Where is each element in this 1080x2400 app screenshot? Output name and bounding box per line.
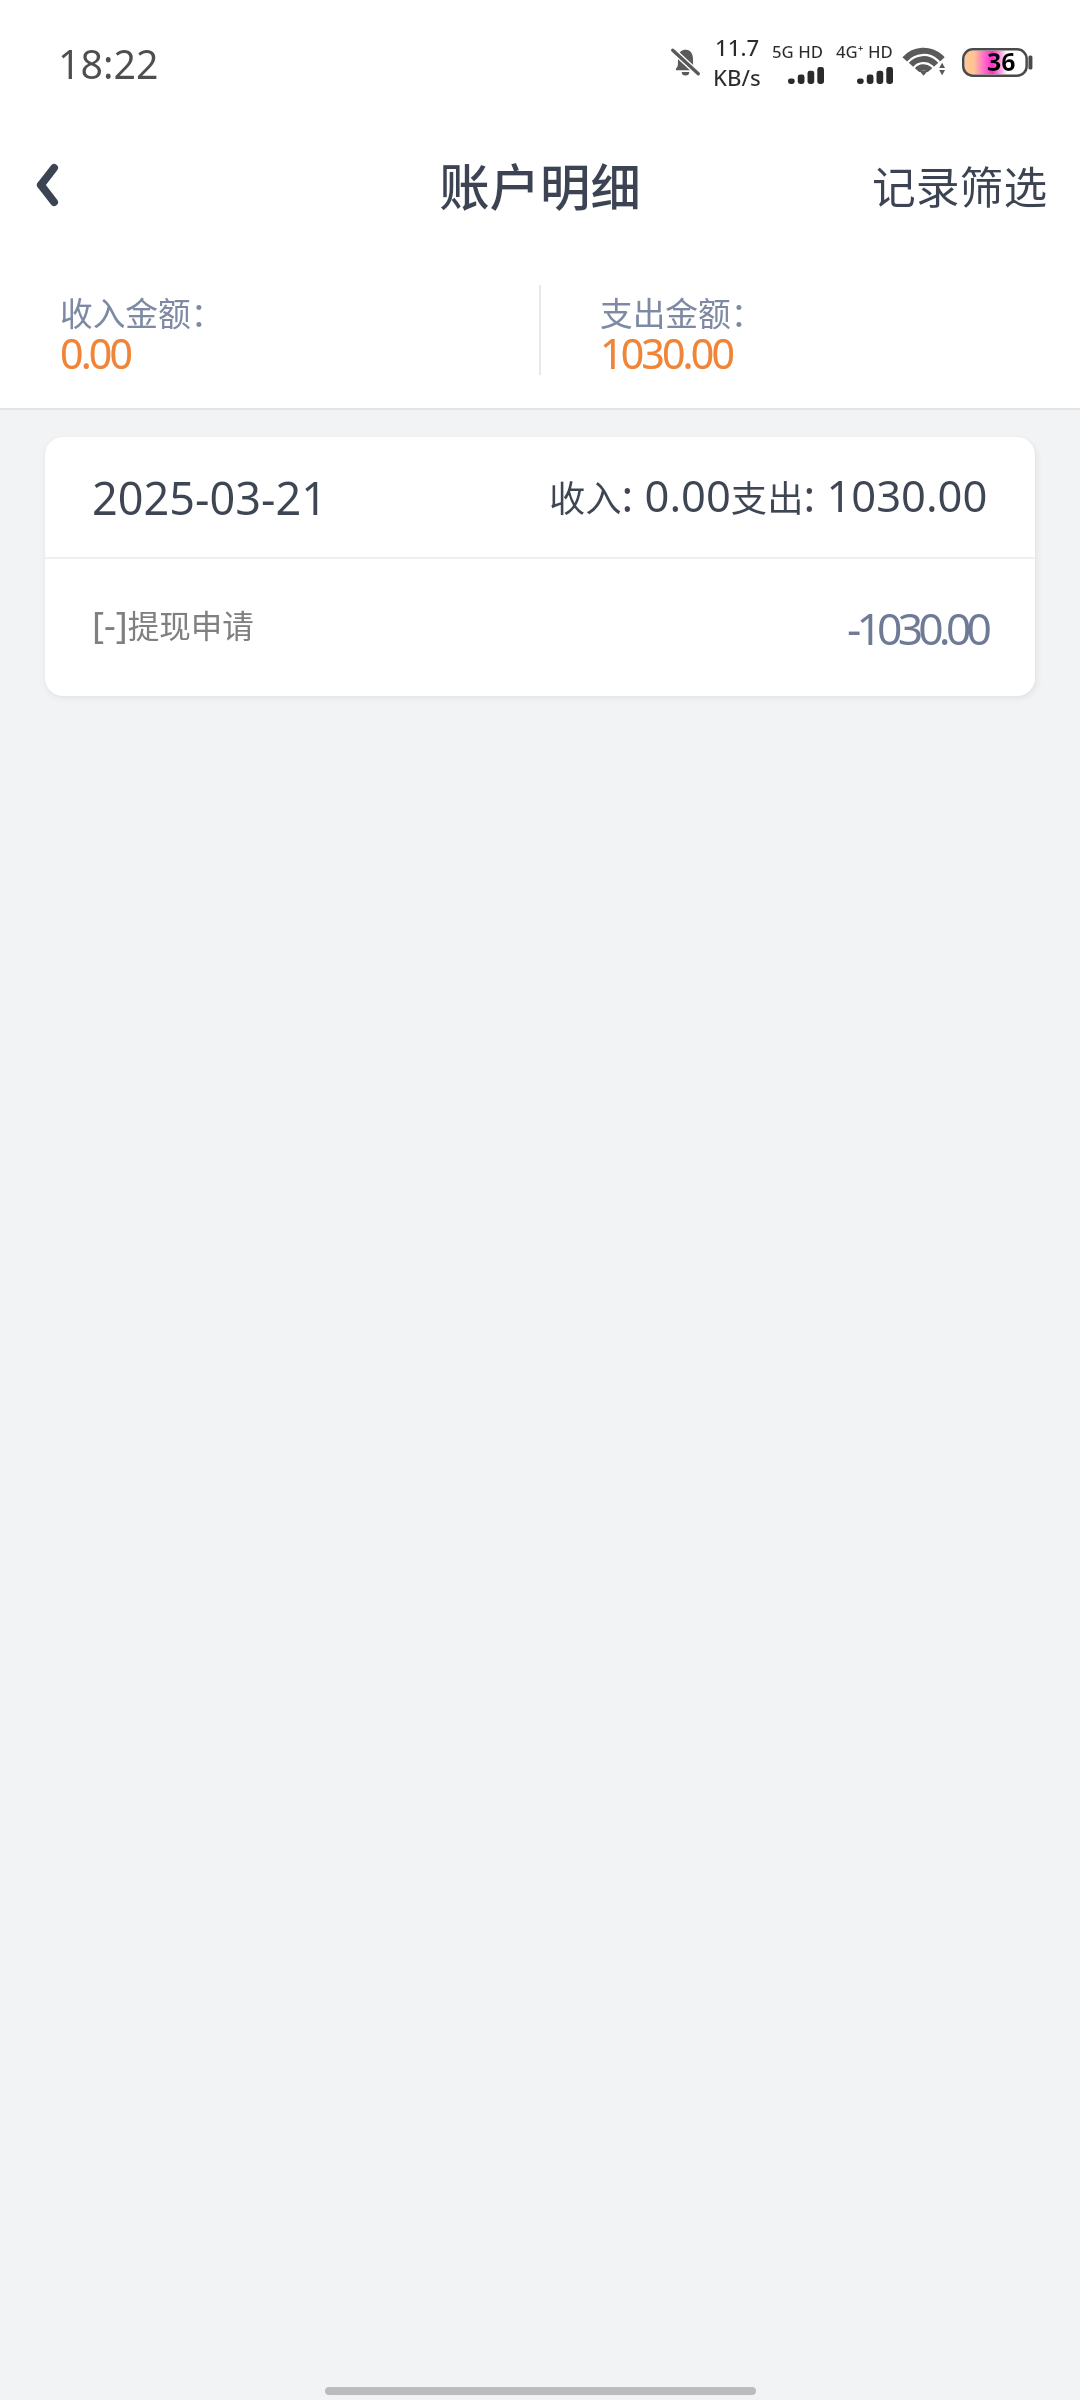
staticText: 账户明细	[439, 148, 641, 221]
staticText: 0.00	[60, 325, 131, 381]
staticText: 支出金额：	[600, 288, 764, 335]
staticText: 收入金额：	[60, 288, 224, 335]
staticText: 4G⁺ HD	[836, 40, 893, 63]
staticText: 11.7	[715, 32, 760, 62]
button[interactable]: [-]提现申请	[45, 559, 1035, 696]
staticText: 记录筛选	[872, 153, 1048, 216]
staticText: 2025-03-21	[92, 467, 327, 528]
button[interactable]: 记录筛选	[837, 129, 1080, 240]
staticText: [-]提现申请	[92, 599, 254, 649]
staticText: KB/s	[713, 62, 761, 92]
button[interactable]: 2025-03-21	[45, 437, 1035, 557]
staticText: 1030.00	[600, 325, 733, 381]
button[interactable]: Back	[0, 113, 119, 257]
staticText: 收入: 0.00支出: 1030.00	[549, 465, 988, 524]
staticText: -1030.00	[847, 598, 988, 658]
staticText: 5G HD	[772, 40, 824, 63]
staticText: 36	[987, 44, 1016, 78]
staticText: 18:22	[58, 37, 159, 91]
